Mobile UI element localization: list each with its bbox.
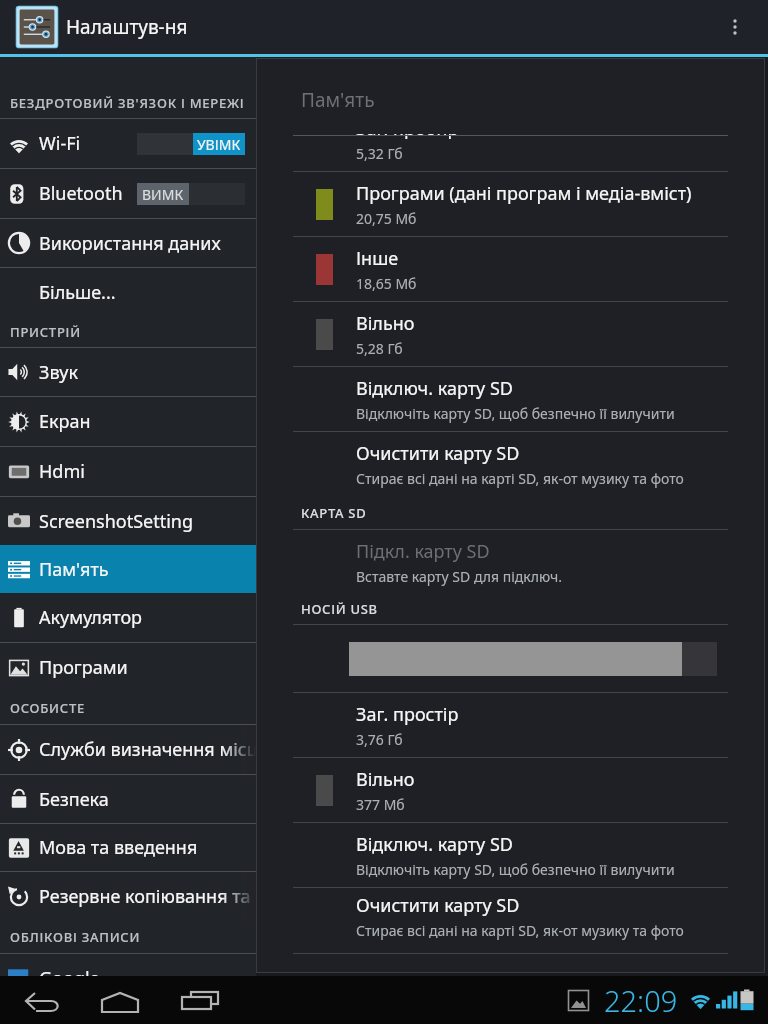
button[interactable]: Більше... (0, 268, 256, 317)
staticText: 377 Мб (356, 795, 405, 814)
button[interactable]: Пам'ять (0, 545, 256, 593)
button[interactable]: Очистити карту SD (257, 888, 764, 945)
staticText: Служби визначення місця (39, 737, 256, 762)
staticText: 3,76 Гб (356, 730, 403, 749)
staticText: 18,65 Мб (356, 274, 417, 293)
staticText: Відключ. карту SD (356, 832, 513, 857)
staticText: ОБЛІКОВІ ЗАПИСИ (10, 928, 141, 946)
button[interactable]: Підкл. карту SD (257, 530, 764, 594)
button[interactable]: Hdmi (0, 447, 256, 496)
staticText: Hdmi (39, 459, 85, 484)
staticText: Екран (39, 409, 91, 434)
button[interactable]: УВІМК (137, 133, 245, 155)
staticText: 5,32 Гб (356, 144, 403, 163)
button[interactable]: Програми (дані програм і медіа-вміст) (257, 172, 764, 236)
button[interactable]: More options (710, 2, 760, 52)
button[interactable]: Вільно (257, 758, 764, 822)
button[interactable]: Back (16, 976, 64, 1024)
button[interactable]: Wi-Fi (0, 119, 256, 168)
button[interactable]: Мова та введення (0, 824, 256, 871)
staticText: Більше... (39, 280, 116, 305)
staticText: Безпека (39, 787, 109, 812)
button[interactable]: Звук (0, 348, 256, 396)
staticText: Вільно (356, 311, 415, 336)
staticText: ВИМК (142, 185, 184, 204)
staticText: Заг. простір (356, 702, 459, 727)
staticText: Відключіть карту SD, щоб безпечно її вил… (356, 404, 675, 423)
staticText: Звук (39, 360, 79, 385)
button[interactable]: Відключ. карту SD (257, 823, 764, 887)
button[interactable]: Заг. простір (257, 134, 764, 171)
staticText: Вставте карту SD для підключ. (356, 567, 562, 586)
staticText: Використання даних (39, 231, 221, 256)
button[interactable]: Резервне копіювання та (0, 872, 256, 921)
button[interactable]: Очистити карту SD (257, 432, 764, 496)
staticText: ОСОБИСТЕ (10, 699, 85, 717)
staticText: Пам'ять (39, 557, 109, 582)
staticText: Відключ. карту SD (356, 376, 513, 401)
staticText: Налаштув-ня (66, 14, 188, 40)
staticText: Інше (356, 246, 399, 271)
staticText: Програми (дані програм і медіа-вміст) (356, 181, 692, 206)
button[interactable]: Recent apps (176, 976, 224, 1024)
staticText: Wi-Fi (39, 131, 81, 156)
button[interactable]: Інше (257, 237, 764, 301)
staticText: Bluetooth (39, 181, 123, 206)
staticText: БЕЗДРОТОВИЙ ЗВ'ЯЗОК І МЕРЕЖІ (10, 94, 245, 112)
staticText: Програми (39, 655, 128, 680)
staticText: 20,75 Мб (356, 209, 417, 228)
staticText: Заг. простір (356, 134, 459, 141)
staticText: ScreenshotSetting (39, 509, 194, 534)
staticText: Мова та введення (39, 835, 198, 860)
button[interactable]: Використання даних (0, 219, 256, 267)
staticText: Стирає всі дані на карті SD, як-от музик… (356, 921, 684, 940)
button[interactable]: Bluetooth (0, 169, 256, 218)
button[interactable]: Google (0, 954, 256, 1003)
staticText: 5,28 Гб (356, 339, 403, 358)
staticText: Пам'ять (301, 87, 375, 113)
staticText: Очистити карту SD (356, 441, 520, 466)
button[interactable]: Програми (0, 643, 256, 692)
button[interactable]: Безпека (0, 775, 256, 823)
staticText: УВІМК (197, 135, 241, 154)
staticText: Вільно (356, 767, 415, 792)
staticText: Стирає всі дані на карті SD, як-от музик… (356, 469, 684, 488)
button[interactable]: ScreenshotSetting (0, 497, 256, 545)
button[interactable]: Акумулятор (0, 593, 256, 642)
staticText: 22:09 (604, 981, 678, 1020)
button[interactable]: Вільно (257, 302, 764, 366)
staticText: Відключіть карту SD, щоб безпечно її вил… (356, 860, 675, 879)
button[interactable]: ВИМК (137, 183, 245, 205)
staticText: Google (39, 966, 100, 991)
button[interactable]: Відключ. карту SD (257, 367, 764, 431)
staticText: Резервне копіювання та (39, 884, 251, 909)
button[interactable]: Служби визначення місця (0, 725, 256, 774)
button[interactable]: Екран (0, 397, 256, 446)
staticText: Підкл. карту SD (356, 539, 490, 564)
staticText: ПРИСТРІЙ (10, 323, 81, 341)
staticText: Очистити карту SD (356, 893, 520, 918)
staticText: НОСІЙ USB (301, 600, 378, 618)
staticText: Акумулятор (39, 605, 143, 630)
button[interactable]: Заг. простір (257, 693, 764, 757)
staticText: КАРТА SD (301, 504, 367, 522)
button[interactable]: Home (96, 976, 144, 1024)
